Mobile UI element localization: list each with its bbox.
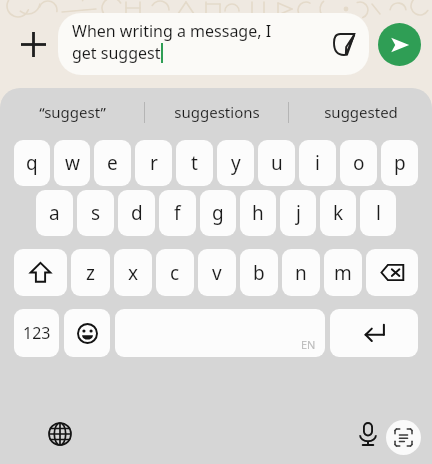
staticText: n xyxy=(295,260,307,286)
button[interactable]: r xyxy=(135,140,172,186)
button[interactable]: j xyxy=(280,190,316,236)
staticText: r xyxy=(150,150,158,176)
staticText: x xyxy=(128,260,139,286)
staticText: c xyxy=(170,260,180,286)
staticText: b xyxy=(253,260,265,286)
staticText: 123 xyxy=(23,322,51,344)
button[interactable]: x xyxy=(114,249,152,296)
staticText: s xyxy=(91,200,101,226)
button[interactable]: Backspace xyxy=(366,249,418,296)
staticText: suggested xyxy=(324,102,398,122)
staticText: q xyxy=(26,150,38,176)
staticText: e xyxy=(107,150,118,176)
staticText: get suggest xyxy=(72,42,161,64)
button[interactable]: b xyxy=(240,249,278,296)
staticText: t xyxy=(191,150,198,176)
button[interactable]: When writing a message, I xyxy=(58,13,369,75)
button[interactable]: h xyxy=(240,190,276,236)
staticText: l xyxy=(376,200,381,226)
button[interactable]: 123 xyxy=(14,309,59,357)
button[interactable]: k xyxy=(320,190,356,236)
staticText: y xyxy=(231,150,241,176)
button[interactable]: l xyxy=(360,190,396,236)
button[interactable]: t xyxy=(176,140,213,186)
button[interactable]: z xyxy=(71,249,110,296)
button[interactable]: p xyxy=(381,140,418,186)
button[interactable]: Voice input xyxy=(348,414,388,454)
button[interactable]: s xyxy=(77,190,114,236)
button[interactable]: Attach xyxy=(8,19,58,69)
staticText: w xyxy=(65,150,80,176)
staticText: When writing a message, I xyxy=(72,20,272,42)
button[interactable]: a xyxy=(36,190,73,236)
button[interactable]: u xyxy=(258,140,295,186)
button[interactable]: suggested xyxy=(289,88,432,136)
button[interactable]: “suggest” xyxy=(0,88,144,136)
button[interactable]: o xyxy=(340,140,377,186)
button[interactable]: d xyxy=(118,190,155,236)
button[interactable]: suggestions xyxy=(145,88,288,136)
button[interactable]: n xyxy=(282,249,320,296)
button[interactable]: g xyxy=(200,190,236,236)
staticText: d xyxy=(131,200,143,226)
button[interactable]: e xyxy=(94,140,131,186)
staticText: z xyxy=(86,260,95,286)
button[interactable]: c xyxy=(156,249,194,296)
staticText: j xyxy=(296,200,301,226)
button[interactable]: Stickers xyxy=(328,28,360,60)
button[interactable]: Space xyxy=(115,309,325,357)
staticText: k xyxy=(333,200,344,226)
staticText: EN xyxy=(301,337,316,352)
button[interactable]: w xyxy=(54,140,90,186)
button[interactable]: f xyxy=(159,190,196,236)
staticText: f xyxy=(174,200,181,226)
staticText: g xyxy=(212,200,224,226)
button[interactable]: Scan text xyxy=(386,420,421,455)
button[interactable]: m xyxy=(324,249,362,296)
button[interactable]: y xyxy=(217,140,254,186)
button[interactable]: v xyxy=(198,249,236,296)
button[interactable]: q xyxy=(14,140,50,186)
staticText: suggestions xyxy=(174,102,260,122)
button[interactable]: Enter xyxy=(330,309,418,357)
staticText: “suggest” xyxy=(39,102,106,122)
staticText: v xyxy=(212,260,222,286)
button[interactable]: Send xyxy=(378,23,421,66)
staticText: m xyxy=(334,260,352,286)
button[interactable]: Emoji xyxy=(64,309,110,357)
staticText: o xyxy=(353,150,365,176)
staticText: i xyxy=(315,150,320,176)
button[interactable]: Shift xyxy=(14,249,67,296)
button[interactable]: Change language xyxy=(40,414,80,454)
staticText: a xyxy=(49,200,60,226)
staticText: u xyxy=(271,150,283,176)
button[interactable]: i xyxy=(299,140,336,186)
staticText: p xyxy=(394,150,406,176)
staticText: h xyxy=(252,200,264,226)
